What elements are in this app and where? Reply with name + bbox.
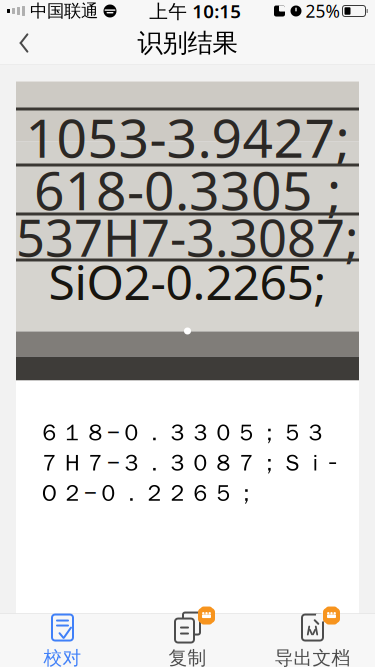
button[interactable]: 导出文档 bbox=[250, 614, 375, 667]
staticText: 中国联通 bbox=[30, 0, 98, 22]
button[interactable]: 返回 bbox=[0, 22, 48, 64]
button[interactable]: 校对 bbox=[0, 614, 125, 667]
staticText: 识别结果 bbox=[137, 27, 237, 58]
staticText: 导出文档 bbox=[274, 646, 350, 667]
staticText: 1053-3.9427; bbox=[25, 102, 349, 172]
button[interactable]: 复制 bbox=[125, 614, 250, 667]
staticText: ６１８−０．３３０５；５３７Ｈ７−３．３０８７；ＳｉＯ２−０．２２６５； bbox=[38, 416, 332, 507]
staticText: 537H7-3.3087; bbox=[16, 203, 359, 271]
staticText: 618-0.3305 ; bbox=[34, 154, 341, 225]
staticText: 复制 bbox=[168, 646, 206, 667]
staticText: 25% bbox=[305, 0, 339, 22]
staticText: 上午 10:15 bbox=[149, 0, 241, 23]
staticText: 校对 bbox=[43, 646, 81, 667]
staticText: SiO2-0.2265; bbox=[48, 250, 326, 313]
